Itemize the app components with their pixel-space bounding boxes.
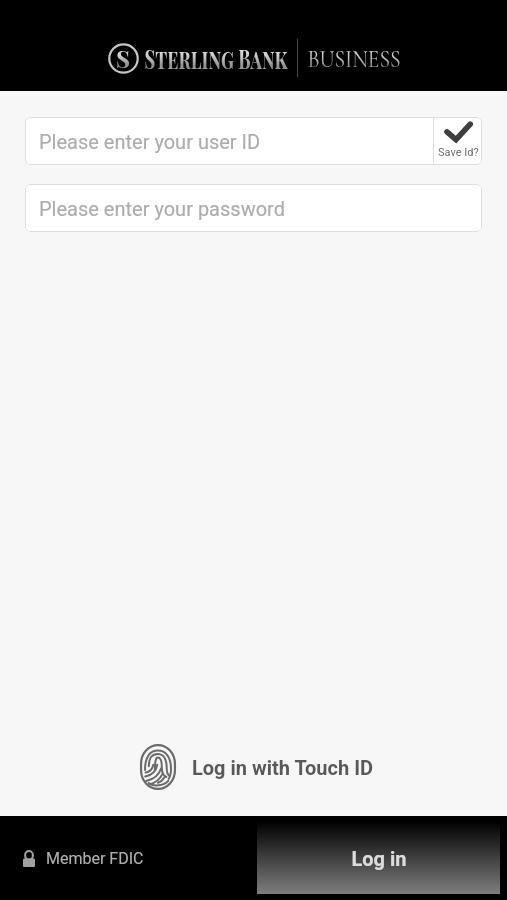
staticText: S — [116, 42, 131, 73]
staticText: Member FDIC — [46, 849, 144, 868]
button[interactable]: Please enter your user ID — [25, 117, 433, 165]
button[interactable]: Save Id — [434, 117, 482, 165]
button[interactable]: Log in with Touch ID — [140, 744, 374, 790]
staticText: BUSINESS — [307, 43, 400, 74]
staticText: Sterling Bank — [144, 40, 288, 71]
button[interactable]: Please enter your password — [25, 184, 482, 232]
staticText: Save Id? — [438, 146, 479, 159]
staticText: Please enter your password — [39, 197, 285, 220]
staticText: Log in with Touch ID — [192, 756, 374, 779]
button[interactable]: Log in — [257, 823, 500, 894]
button[interactable]: Member FDIC — [23, 849, 144, 868]
staticText: Log in — [351, 847, 407, 870]
staticText: Please enter your user ID — [39, 130, 261, 153]
